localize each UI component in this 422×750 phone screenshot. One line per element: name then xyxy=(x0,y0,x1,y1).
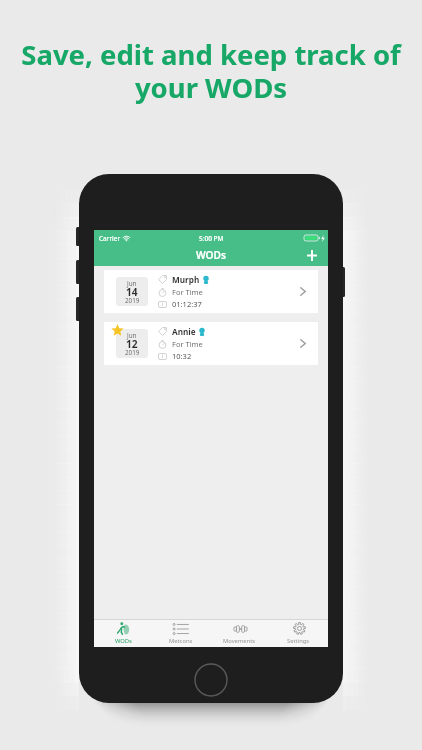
staticText: WODs xyxy=(196,248,227,262)
button[interactable]: Metcons xyxy=(152,620,210,647)
button[interactable]: Jun xyxy=(104,322,318,365)
staticText: For Time xyxy=(172,339,203,349)
button[interactable]: Settings xyxy=(269,620,328,647)
staticText: 12 xyxy=(126,337,138,351)
staticText: 10:32 xyxy=(172,351,192,361)
staticText: 01:12:37 xyxy=(172,299,202,309)
staticText: 14 xyxy=(126,285,138,299)
staticText: Murph xyxy=(172,274,200,285)
staticText: 2019 xyxy=(125,348,140,357)
staticText: Movements xyxy=(223,637,256,645)
button[interactable]: Movements xyxy=(210,620,269,647)
button[interactable]: Jun xyxy=(104,270,318,313)
staticText: For Time xyxy=(172,287,203,297)
staticText: 2019 xyxy=(125,296,140,305)
staticText: Metcons xyxy=(169,637,193,645)
button[interactable]: WODs xyxy=(94,620,152,647)
staticText: Save, edit and keep track of your WODs xyxy=(21,36,401,106)
button[interactable]: Add WOD xyxy=(302,246,322,266)
staticText: WODs xyxy=(115,637,132,645)
staticText: 5:00 PM xyxy=(199,234,224,243)
staticText: Settings xyxy=(287,637,310,645)
staticText: Carrier xyxy=(99,234,121,243)
staticText: Jun xyxy=(127,331,137,340)
staticText: Jun xyxy=(127,279,137,288)
staticText: Annie xyxy=(172,326,196,337)
